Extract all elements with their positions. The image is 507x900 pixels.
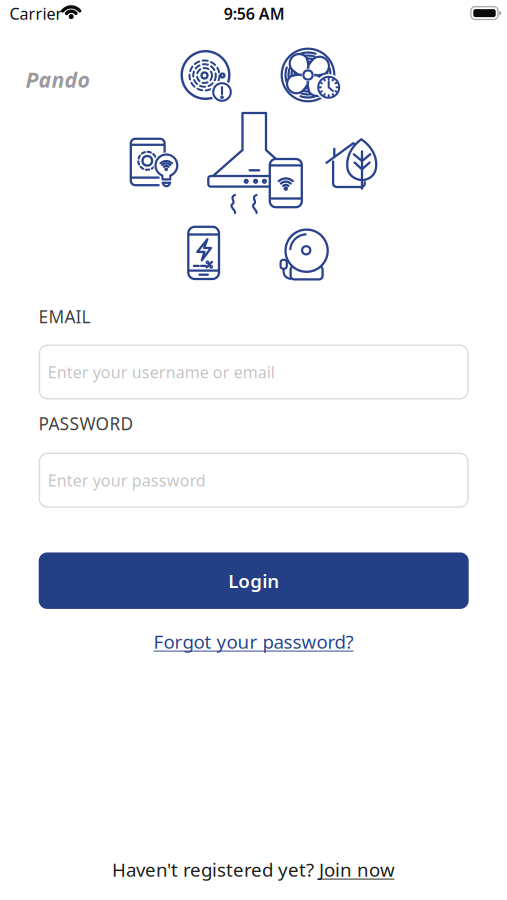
staticText: Pando — [25, 65, 89, 94]
button[interactable]: Enter your username or email — [39, 344, 469, 399]
staticText: Enter your username or email — [48, 361, 275, 383]
staticText: Enter your password — [48, 470, 206, 491]
button[interactable]: Haven't registered yet? Join now — [112, 857, 395, 882]
button[interactable]: Login — [39, 552, 469, 609]
staticText: PASSWORD — [38, 412, 133, 435]
button[interactable]: Enter your password — [39, 453, 469, 508]
staticText: Haven't registered yet? Join now — [112, 857, 395, 882]
staticText: EMAIL — [38, 305, 90, 328]
staticText: Login — [228, 568, 279, 593]
button[interactable]: Forgot your password? — [153, 629, 353, 654]
staticText: Forgot your password? — [153, 629, 353, 654]
staticText: 9:56 AM — [224, 3, 285, 24]
staticText: Carrier — [9, 3, 62, 24]
